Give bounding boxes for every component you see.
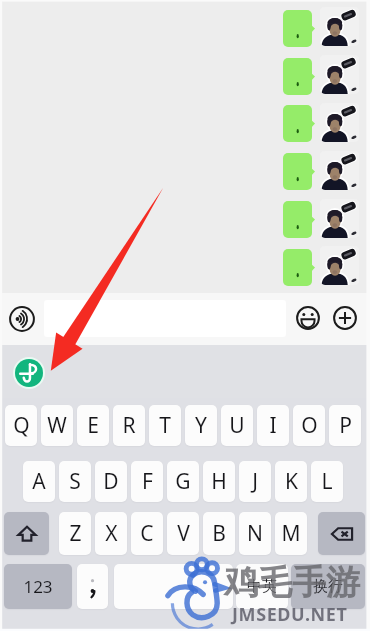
button[interactable]: Message bbox=[283, 105, 315, 142]
staticText: L bbox=[321, 467, 333, 496]
button[interactable]: U bbox=[221, 405, 253, 446]
staticText: M bbox=[281, 519, 301, 548]
button[interactable]: J bbox=[239, 461, 271, 502]
staticText: T bbox=[159, 411, 171, 440]
staticText: V bbox=[177, 519, 190, 548]
button[interactable]: Avatar bbox=[320, 55, 359, 94]
button[interactable]: E bbox=[77, 405, 109, 446]
staticText: N bbox=[247, 519, 263, 548]
button[interactable]: Message bbox=[283, 58, 315, 95]
button[interactable]: Avatar bbox=[320, 246, 359, 285]
button[interactable]: Emoji bbox=[296, 306, 320, 330]
button[interactable]: Message bbox=[283, 201, 315, 238]
button[interactable]: X bbox=[95, 512, 127, 555]
button[interactable]: N bbox=[239, 512, 271, 555]
staticText: 鸡毛手游 bbox=[224, 561, 360, 604]
staticText: S bbox=[69, 467, 81, 496]
button[interactable]: Avatar bbox=[320, 151, 359, 190]
button[interactable]: L bbox=[311, 461, 343, 502]
staticText: H bbox=[211, 467, 227, 496]
staticText: K bbox=[285, 467, 298, 496]
button[interactable] bbox=[44, 300, 286, 337]
staticText: R bbox=[122, 411, 136, 440]
button[interactable]: Avatar bbox=[320, 103, 359, 142]
button[interactable]: 123 bbox=[4, 564, 72, 609]
staticText: 中英 bbox=[247, 577, 277, 596]
button[interactable]: Message bbox=[283, 249, 315, 286]
button[interactable]: Z bbox=[59, 512, 91, 555]
button[interactable]: 换行 bbox=[291, 564, 365, 609]
button[interactable]: 中英 bbox=[236, 564, 288, 609]
staticText: E bbox=[87, 411, 99, 440]
button[interactable]: Voice input bbox=[9, 306, 35, 332]
button[interactable]: R bbox=[113, 405, 145, 446]
button[interactable]: I bbox=[257, 405, 289, 446]
button[interactable]: D bbox=[95, 461, 127, 502]
staticText: U bbox=[229, 411, 245, 440]
staticText: Y bbox=[195, 411, 207, 440]
staticText: C bbox=[140, 519, 154, 548]
button[interactable]: Message bbox=[283, 153, 315, 190]
staticText: W bbox=[47, 411, 67, 440]
staticText: O bbox=[301, 411, 318, 440]
button[interactable]: Mini program bbox=[13, 357, 45, 389]
button[interactable]: A bbox=[23, 461, 55, 502]
staticText: G bbox=[175, 467, 191, 496]
button[interactable]: Shift bbox=[4, 512, 49, 555]
button[interactable]: V bbox=[167, 512, 199, 555]
button[interactable]: Message bbox=[283, 10, 315, 47]
button[interactable]: K bbox=[275, 461, 307, 502]
staticText: Q bbox=[13, 411, 30, 440]
button[interactable]: F bbox=[131, 461, 163, 502]
staticText: X bbox=[105, 519, 118, 548]
button[interactable]: Space bbox=[114, 564, 233, 609]
button[interactable]: M bbox=[275, 512, 307, 555]
staticText: F bbox=[142, 467, 153, 496]
staticText: 123 bbox=[23, 575, 53, 598]
button[interactable]: Semicolon bbox=[77, 564, 108, 609]
button[interactable]: C bbox=[131, 512, 163, 555]
button[interactable]: P bbox=[329, 405, 361, 446]
button[interactable]: Q bbox=[5, 405, 37, 446]
staticText: J bbox=[252, 467, 258, 496]
button[interactable]: B bbox=[203, 512, 235, 555]
staticText: I bbox=[269, 411, 277, 440]
staticText: P bbox=[339, 411, 352, 440]
button[interactable]: S bbox=[59, 461, 91, 502]
button[interactable]: Avatar bbox=[320, 199, 359, 238]
button[interactable]: G bbox=[167, 461, 199, 502]
button[interactable]: Y bbox=[185, 405, 217, 446]
staticText: D bbox=[103, 467, 119, 496]
button[interactable]: O bbox=[293, 405, 325, 446]
button[interactable]: H bbox=[203, 461, 235, 502]
button[interactable]: W bbox=[41, 405, 73, 446]
staticText: JMSEDU.NET bbox=[232, 602, 348, 627]
button[interactable]: Backspace bbox=[318, 512, 365, 555]
staticText: B bbox=[212, 519, 226, 548]
button[interactable]: Avatar bbox=[320, 7, 359, 46]
staticText: 换行 bbox=[313, 577, 343, 596]
button[interactable]: T bbox=[149, 405, 181, 446]
staticText: A bbox=[32, 467, 46, 496]
staticText: Z bbox=[69, 519, 82, 548]
button[interactable]: More bbox=[333, 306, 357, 330]
